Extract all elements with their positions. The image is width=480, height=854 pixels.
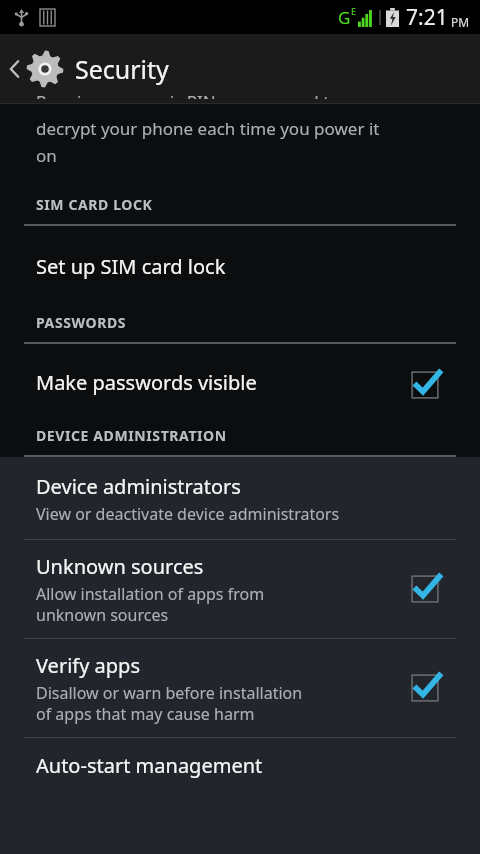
staticText: Unknown sources	[36, 553, 204, 580]
button[interactable]: Make passwords visible	[0, 344, 480, 426]
staticText: PM	[451, 14, 470, 30]
staticText: on	[36, 144, 57, 167]
staticText: Set up SIM card lock	[36, 253, 226, 280]
staticText: Verify apps	[36, 652, 140, 679]
button[interactable]: Auto-start management	[0, 738, 480, 779]
staticText: Require a numeric PIN or password to	[36, 90, 340, 99]
staticText: Security	[75, 52, 169, 86]
button[interactable]: Verify apps	[0, 639, 480, 737]
staticText: decrypt your phone each time you power i…	[36, 117, 380, 140]
staticText: SIM CARD LOCK	[36, 195, 153, 214]
button[interactable]: Set up SIM card lock	[0, 226, 480, 313]
staticText: G	[338, 6, 351, 29]
button[interactable]: Unknown sources	[0, 540, 480, 638]
staticText: Device administrators	[36, 473, 241, 500]
staticText: 7:21	[406, 3, 448, 32]
button[interactable]: Navigate up, Security	[0, 49, 181, 89]
staticText: Allow installation of apps from unknown …	[36, 583, 265, 626]
staticText: PASSWORDS	[36, 313, 127, 332]
staticText: Make passwords visible	[36, 369, 257, 396]
staticText: View or deactivate device administrators	[36, 503, 340, 525]
staticText: E	[351, 5, 357, 17]
staticText: DEVICE ADMINISTRATION	[36, 426, 227, 445]
staticText: Auto-start management	[36, 752, 263, 779]
button[interactable]: Device administrators	[0, 457, 480, 539]
staticText: Disallow or warn before installation of …	[36, 682, 303, 725]
